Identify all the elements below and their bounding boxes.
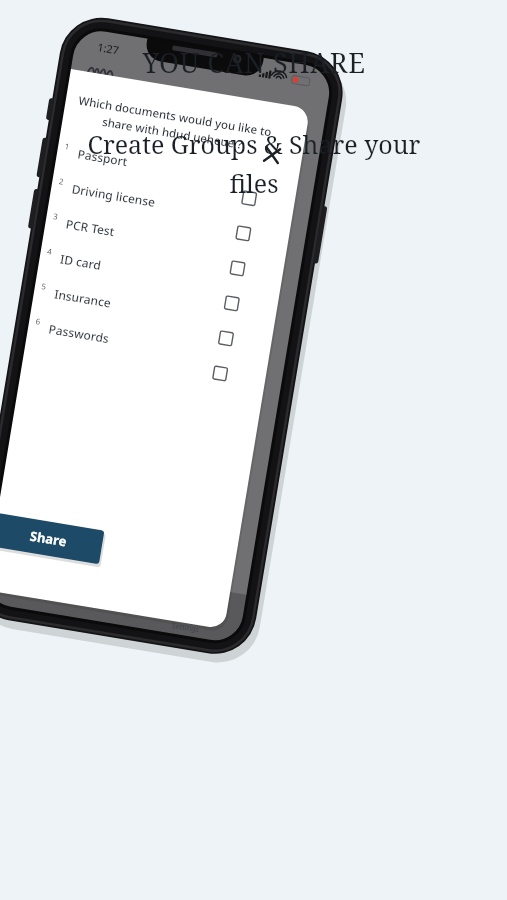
- staticText: YOU CAN SHARE: [142, 44, 366, 81]
- button[interactable]: Close dialog: [283, 384, 309, 410]
- staticText: Create Groups & Share your files: [69, 127, 439, 200]
